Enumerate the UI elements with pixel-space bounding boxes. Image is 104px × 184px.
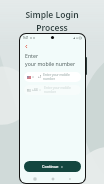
staticText: +44	[32, 88, 38, 92]
staticText: +1	[38, 75, 42, 79]
button[interactable]: Continue	[24, 161, 81, 172]
staticText: Enter	[25, 52, 39, 59]
staticText: 9:41	[23, 36, 29, 40]
staticText: Enter your mobile number	[43, 73, 78, 81]
button[interactable]: Recents	[32, 176, 38, 182]
button[interactable]: Back	[23, 43, 29, 49]
staticText: Simple Login	[25, 9, 79, 21]
staticText: Process	[36, 22, 68, 34]
button[interactable]: +1	[24, 72, 81, 82]
staticText: Enter your mobile number	[44, 86, 78, 94]
staticText: your mobile number	[25, 60, 76, 67]
staticText: Continue	[42, 164, 59, 169]
button[interactable]: Back	[67, 176, 73, 182]
button[interactable]: +44	[24, 85, 81, 95]
button[interactable]: Home	[50, 176, 56, 182]
